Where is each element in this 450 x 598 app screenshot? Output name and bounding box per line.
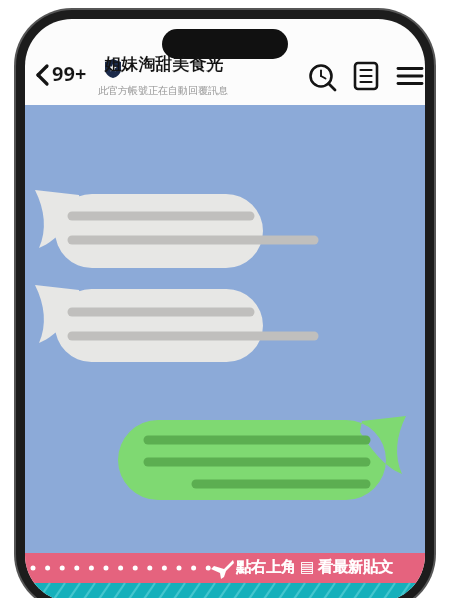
button[interactable]: 姐妹淘甜美食光: [104, 54, 290, 82]
button[interactable]: Search: [301, 60, 341, 94]
button[interactable]: Back, 99 plus unread: [28, 60, 102, 92]
button[interactable]: Notes: [347, 60, 385, 94]
staticText: 點右上角 ▤ 看最新貼文: [236, 556, 393, 576]
staticText: 此官方帳號正在自動回覆訊息: [98, 84, 228, 97]
button[interactable]: Menu: [391, 60, 429, 94]
staticText: 99+: [52, 60, 87, 87]
staticText: 姐妹淘甜美食光: [104, 54, 223, 75]
button[interactable]: Tap top-right icon for newest posts: [24, 552, 426, 583]
